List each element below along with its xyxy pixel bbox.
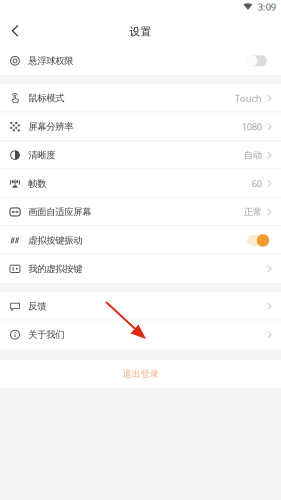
staticText: 我的虚拟按键 [28,263,82,275]
staticText: 60 [252,177,262,190]
staticText: 3:09 [258,1,276,13]
button[interactable]: 画面自适应屏幕 [0,198,281,226]
button[interactable]: 返回 [6,19,30,43]
button[interactable]: 帧数 [0,169,281,198]
staticText: 清晰度 [28,149,55,161]
button[interactable]: 我的虚拟按键 [0,255,281,283]
button[interactable]: 悬浮球权限 [0,47,281,75]
button[interactable]: 虚拟按键振动 [0,226,281,255]
staticText: 正常 [244,206,262,218]
button[interactable]: 屏幕分辨率 [0,112,281,141]
staticText: 虚拟按键振动 [28,235,82,246]
button[interactable]: 鼠标模式 [0,84,281,112]
staticText: 鼠标模式 [28,92,64,104]
staticText: 屏幕分辨率 [28,121,73,132]
staticText: 1080 [242,120,262,133]
button[interactable]: 关于我们 [0,320,281,349]
staticText: 自动 [244,149,262,161]
button[interactable]: 退出登录 [0,360,281,388]
staticText: 画面自适应屏幕 [28,206,91,218]
staticText: 退出登录 [122,368,158,380]
staticText: 帧数 [28,178,46,189]
staticText: 悬浮球权限 [28,55,73,67]
staticText: 设置 [129,25,151,38]
button[interactable]: 清晰度 [0,141,281,169]
staticText: 关于我们 [28,329,64,340]
button[interactable]: 反馈 [0,292,281,320]
staticText: 反馈 [28,300,46,312]
staticText: Touch [235,92,262,104]
